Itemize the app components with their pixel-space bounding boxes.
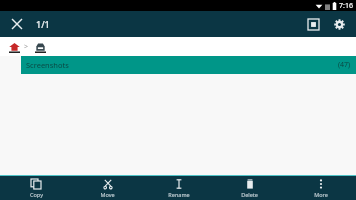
staticText: (47) [338,60,351,70]
button[interactable]: Move [72,176,143,200]
button[interactable]: Select all [302,13,324,35]
button[interactable]: Close [6,13,28,35]
staticText: More [314,191,328,198]
button[interactable]: Screenshots [21,56,356,74]
button[interactable]: Settings [328,13,350,35]
staticText: > [24,42,29,52]
staticText: Move [100,191,115,198]
button[interactable]: Storage [32,39,48,55]
button[interactable]: Delete [214,176,285,200]
staticText: 1/1 [36,18,50,30]
button[interactable]: Home [6,39,22,55]
staticText: Rename [168,191,190,198]
staticText: Copy [30,191,43,198]
staticText: 7:16 [339,1,353,11]
staticText: Screenshots [26,60,69,70]
button[interactable]: Rename [143,176,214,200]
button[interactable]: Copy [0,176,72,200]
staticText: Delete [241,191,258,198]
button[interactable]: More [285,176,356,200]
